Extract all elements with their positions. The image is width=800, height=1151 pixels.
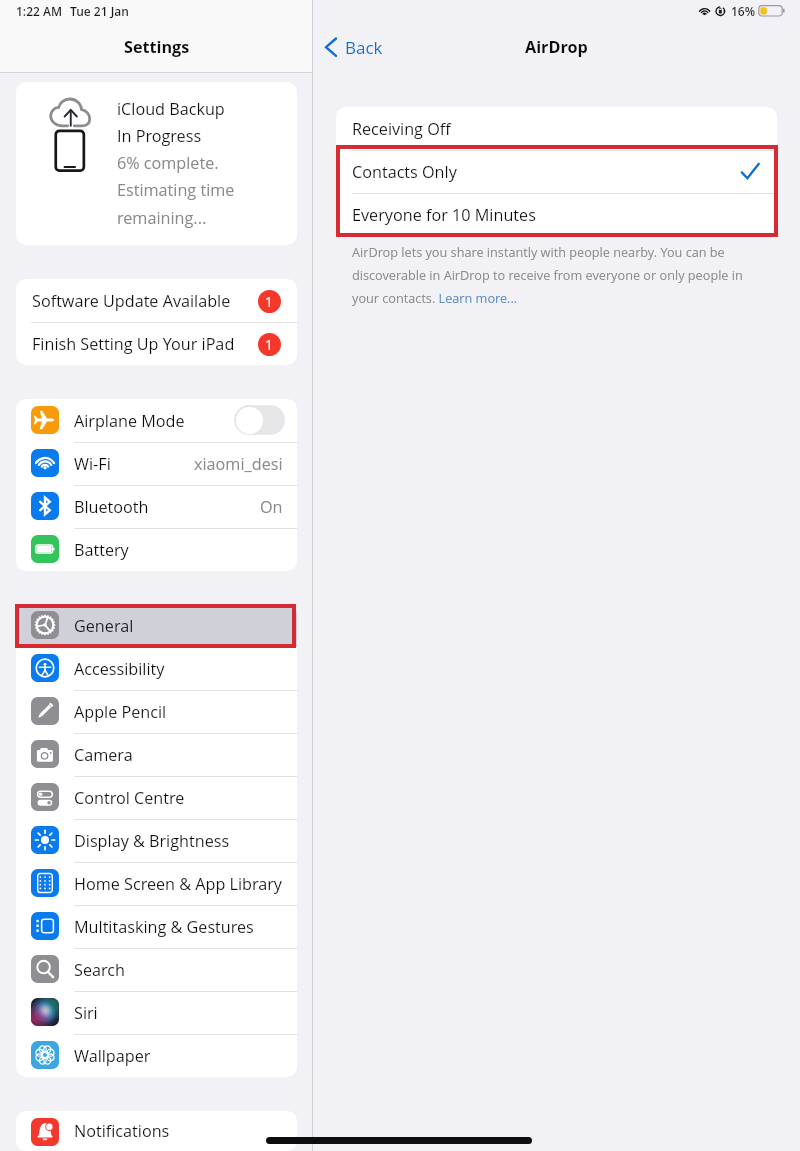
staticText: 1:22 AM xyxy=(16,3,62,19)
staticText: Apple Pencil xyxy=(74,701,167,723)
button[interactable]: Battery xyxy=(16,528,297,571)
button[interactable]: Wi-Fi xyxy=(16,442,297,485)
button[interactable]: Camera xyxy=(16,733,297,776)
staticText: Home Screen & App Library xyxy=(74,873,283,895)
button[interactable]: Apple Pencil xyxy=(16,690,297,733)
button[interactable]: Finish Setting Up Your iPad xyxy=(16,322,297,365)
staticText: Wi-Fi xyxy=(74,453,111,475)
staticText: On xyxy=(260,496,283,518)
staticText: Estimating time xyxy=(117,179,235,201)
button[interactable]: Bluetooth xyxy=(16,485,297,528)
button[interactable]: Multitasking & Gestures xyxy=(16,905,297,948)
staticText: xiaomi_desi xyxy=(194,453,283,475)
staticText: 16% xyxy=(731,3,756,19)
staticText: discoverable in AirDrop to receive from … xyxy=(352,266,743,283)
staticText: Finish Setting Up Your iPad xyxy=(32,333,235,355)
staticText: In Progress xyxy=(117,125,202,147)
staticText: Tue 21 Jan xyxy=(70,3,129,19)
staticText: General xyxy=(74,615,134,637)
staticText: Control Centre xyxy=(74,787,185,809)
staticText: Software Update Available xyxy=(32,290,231,312)
button[interactable]: Display & Brightness xyxy=(16,819,297,862)
button[interactable]: Siri xyxy=(16,991,297,1034)
button[interactable]: Everyone for 10 Minutes xyxy=(336,193,777,236)
button[interactable]: Airplane Mode xyxy=(16,399,297,442)
button[interactable]: General xyxy=(16,604,297,647)
staticText: Battery xyxy=(74,539,129,561)
button[interactable]: Contacts Only xyxy=(336,150,777,193)
staticText: Wallpaper xyxy=(74,1045,151,1067)
button[interactable]: Home Screen & App Library xyxy=(16,862,297,905)
staticText: Everyone for 10 Minutes xyxy=(352,204,536,226)
staticText: AirDrop xyxy=(525,36,588,58)
button[interactable]: Accessibility xyxy=(16,647,297,690)
staticText: Receiving Off xyxy=(352,118,451,140)
staticText: Notifications xyxy=(74,1120,170,1142)
staticText: Bluetooth xyxy=(74,496,149,518)
button[interactable]: Back xyxy=(320,33,390,61)
button[interactable]: Software Update Available xyxy=(16,279,297,322)
button[interactable]: Receiving Off xyxy=(336,107,777,150)
staticText: AirDrop lets you share instantly with pe… xyxy=(352,243,725,260)
button[interactable]: Wallpaper xyxy=(16,1034,297,1077)
staticText: Siri xyxy=(74,1002,98,1024)
staticText: Contacts Only xyxy=(352,161,457,183)
staticText: Search xyxy=(74,959,125,981)
staticText: Settings xyxy=(124,36,190,58)
staticText: 1 xyxy=(265,292,274,311)
staticText: your contacts. Learn more... xyxy=(352,289,518,306)
staticText: Camera xyxy=(74,744,133,766)
button[interactable]: Airplane Mode toggle xyxy=(234,405,285,435)
staticText: Display & Brightness xyxy=(74,830,230,852)
button[interactable]: iCloud Backup xyxy=(16,82,297,245)
staticText: Airplane Mode xyxy=(74,410,185,432)
button[interactable]: Search xyxy=(16,948,297,991)
staticText: iCloud Backup xyxy=(117,98,225,120)
staticText: 6% complete. xyxy=(117,152,219,174)
button[interactable]: Control Centre xyxy=(16,776,297,819)
button[interactable]: Notifications xyxy=(16,1111,297,1151)
staticText: Accessibility xyxy=(74,658,165,680)
staticText: 1 xyxy=(265,335,274,354)
staticText: Multitasking & Gestures xyxy=(74,916,254,938)
staticText: remaining... xyxy=(117,207,207,229)
staticText: Back xyxy=(345,36,383,59)
